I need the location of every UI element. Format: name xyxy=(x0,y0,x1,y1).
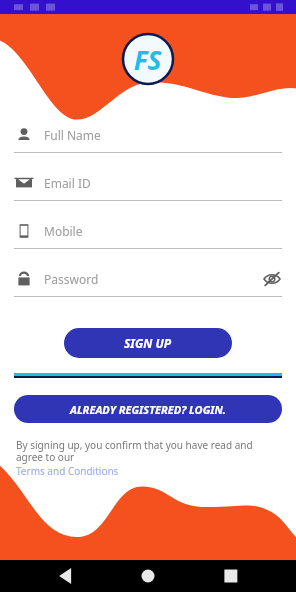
button[interactable]: Mobile xyxy=(14,214,282,248)
button[interactable]: Terms and Conditions xyxy=(16,464,119,478)
staticText: SIGN UP xyxy=(124,335,172,351)
button[interactable]: Email ID xyxy=(14,166,282,200)
staticText: FS xyxy=(134,42,162,77)
staticText: Mobile xyxy=(44,223,83,239)
staticText: Full Name xyxy=(44,127,101,143)
button[interactable]: Full Name xyxy=(14,118,282,152)
staticText: By signing up, you confirm that you have… xyxy=(16,438,280,464)
button[interactable]: Toggle password visibility xyxy=(262,269,282,289)
button[interactable]: Password xyxy=(14,262,282,296)
staticText: ALREADY REGISTERED? LOGIN. xyxy=(70,402,226,417)
staticText: Email ID xyxy=(44,175,91,191)
button[interactable]: ALREADY REGISTERED? LOGIN. xyxy=(14,395,282,423)
staticText: Password xyxy=(44,271,99,287)
button[interactable]: SIGN UP xyxy=(64,328,232,358)
